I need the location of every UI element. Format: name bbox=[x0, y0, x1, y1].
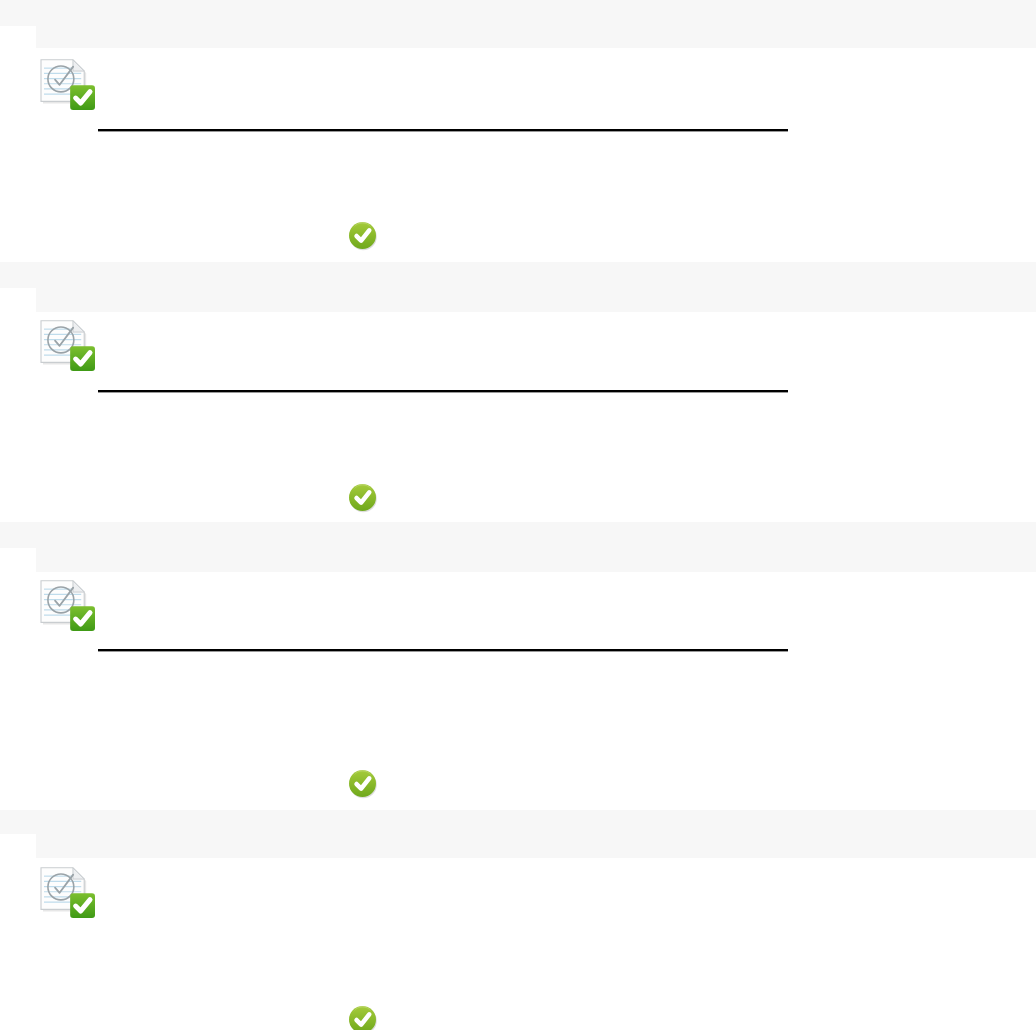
button[interactable]: Approved document 4 bbox=[41, 866, 95, 918]
button[interactable]: Approved document 2 bbox=[41, 319, 95, 371]
button[interactable]: Approved document 1 bbox=[41, 58, 95, 110]
button[interactable]: Approved document 3 bbox=[41, 579, 95, 631]
button[interactable]: Verified 3 bbox=[349, 770, 376, 797]
button[interactable]: Verified 4 bbox=[349, 1006, 376, 1030]
button[interactable]: Verified 1 bbox=[349, 222, 376, 249]
button[interactable]: Verified 2 bbox=[349, 484, 376, 511]
